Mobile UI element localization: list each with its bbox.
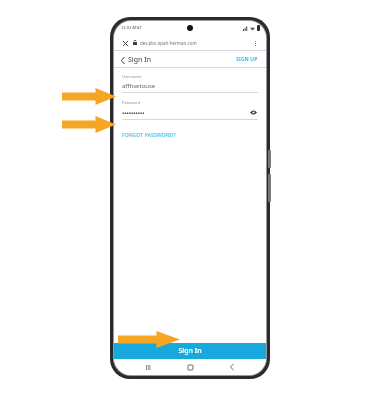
button[interactable]: FORGOT PASSWORD? xyxy=(122,130,176,141)
button[interactable]: Sign In xyxy=(114,343,266,359)
staticText: Password xyxy=(122,100,141,105)
staticText: dev.pbs.opah-herman.com xyxy=(140,40,250,46)
staticText: Username xyxy=(122,74,142,79)
staticText: 12:03 AT&T xyxy=(121,25,142,30)
staticText: Sign In xyxy=(128,55,152,65)
staticText: Sign In xyxy=(178,346,202,356)
button[interactable]: Username xyxy=(122,74,258,93)
button[interactable]: SIGN UP xyxy=(234,54,260,65)
button[interactable]: Recent apps xyxy=(140,359,156,375)
button[interactable]: Close xyxy=(120,38,130,48)
staticText: affhsetouse xyxy=(122,82,258,90)
staticText: SIGN UP xyxy=(236,56,258,63)
button[interactable]: Home xyxy=(182,359,198,375)
button[interactable]: Back xyxy=(224,359,240,375)
button[interactable]: More options xyxy=(250,38,260,48)
button[interactable]: Password xyxy=(122,100,258,120)
button[interactable]: Show password xyxy=(249,108,258,117)
button[interactable]: Sign In xyxy=(120,53,153,67)
staticText: •••••••••• xyxy=(122,109,249,117)
staticText: FORGOT PASSWORD? xyxy=(122,132,176,139)
